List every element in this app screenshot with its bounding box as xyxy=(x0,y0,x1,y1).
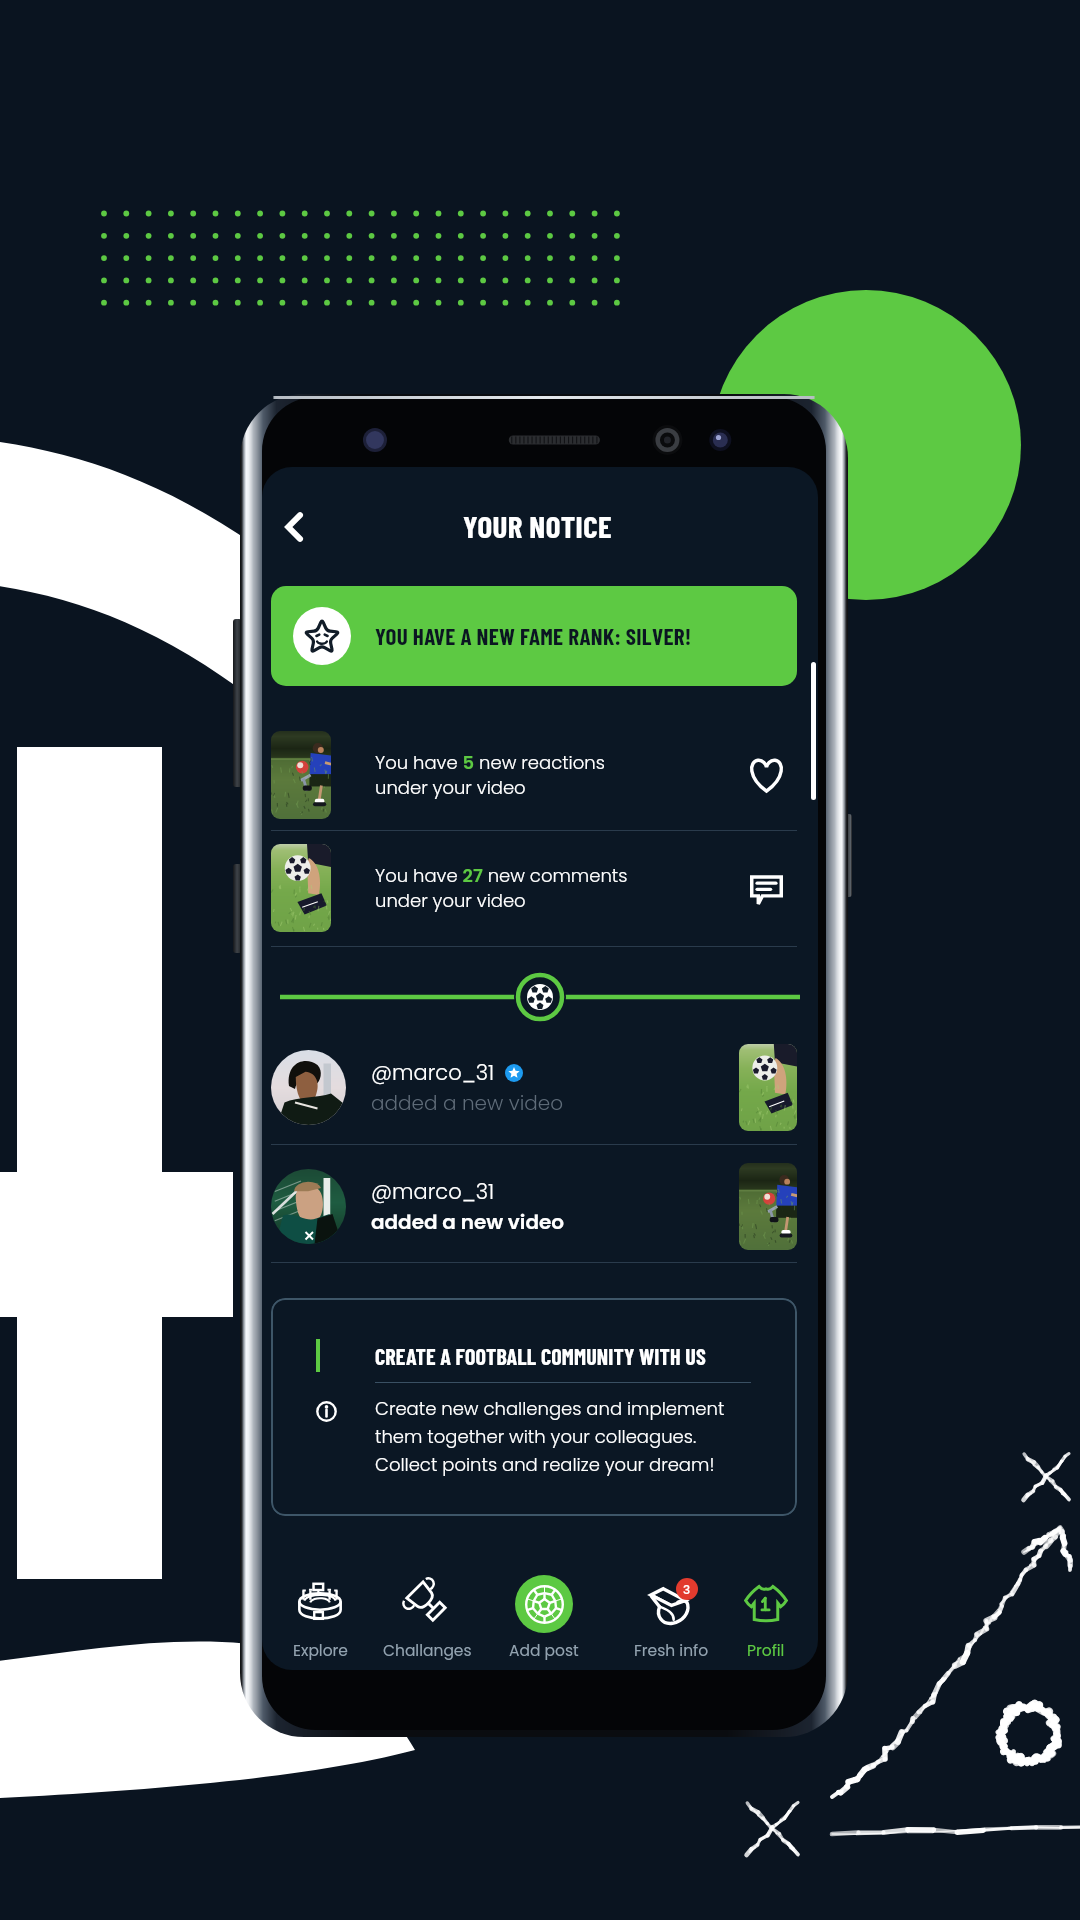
button[interactable]: Challanges xyxy=(374,1557,480,1665)
button[interactable]: CREATE A FOOTBALL COMMUNITY WITH US xyxy=(271,1298,797,1516)
button[interactable]: @marco_31 xyxy=(262,1156,818,1256)
staticText: Add post xyxy=(509,1640,579,1662)
staticText: Fresh info xyxy=(634,1640,709,1662)
staticText: added a new video xyxy=(371,1208,565,1236)
staticText: You have 5 new reactions xyxy=(375,750,605,775)
staticText: You have 27 new comments xyxy=(375,863,628,888)
button[interactable]: Add post xyxy=(491,1557,597,1665)
button[interactable]: YOU HAVE A NEW FAME RANK: SILVER! xyxy=(271,586,797,686)
button[interactable]: Back xyxy=(268,500,322,554)
staticText: YOUR NOTICE xyxy=(463,507,612,544)
button[interactable]: 3 xyxy=(618,1557,724,1665)
staticText: Profil xyxy=(747,1640,785,1662)
button[interactable]: Profil xyxy=(713,1557,818,1665)
button[interactable]: You have 5 new reactions xyxy=(262,722,818,827)
button[interactable]: Explore xyxy=(267,1557,373,1665)
staticText: Challanges xyxy=(383,1640,472,1662)
staticText: YOU HAVE A NEW FAME RANK: SILVER! xyxy=(375,622,692,650)
staticText: @marco_31 xyxy=(371,1177,495,1206)
staticText: under your video xyxy=(375,775,526,800)
staticText: 3 xyxy=(683,1581,691,1598)
staticText: @marco_31 xyxy=(371,1058,495,1087)
staticText: Explore xyxy=(293,1640,348,1662)
button[interactable]: You have 27 new comments xyxy=(262,835,818,940)
button[interactable]: @marco_31 xyxy=(262,1037,818,1137)
staticText: Create new challenges and implement them… xyxy=(375,1396,740,1477)
staticText: under your video xyxy=(375,888,526,913)
staticText: added a new video xyxy=(371,1089,564,1117)
staticText: CREATE A FOOTBALL COMMUNITY WITH US xyxy=(375,1343,706,1369)
